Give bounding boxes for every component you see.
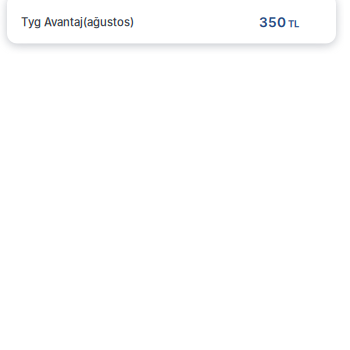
button[interactable]: Tyg Avantaj(ağustos) (7, 0, 336, 43)
staticText: 350 (259, 14, 286, 30)
staticText: TL (288, 18, 299, 29)
staticText: Tyg Avantaj(ağustos) (21, 15, 134, 29)
